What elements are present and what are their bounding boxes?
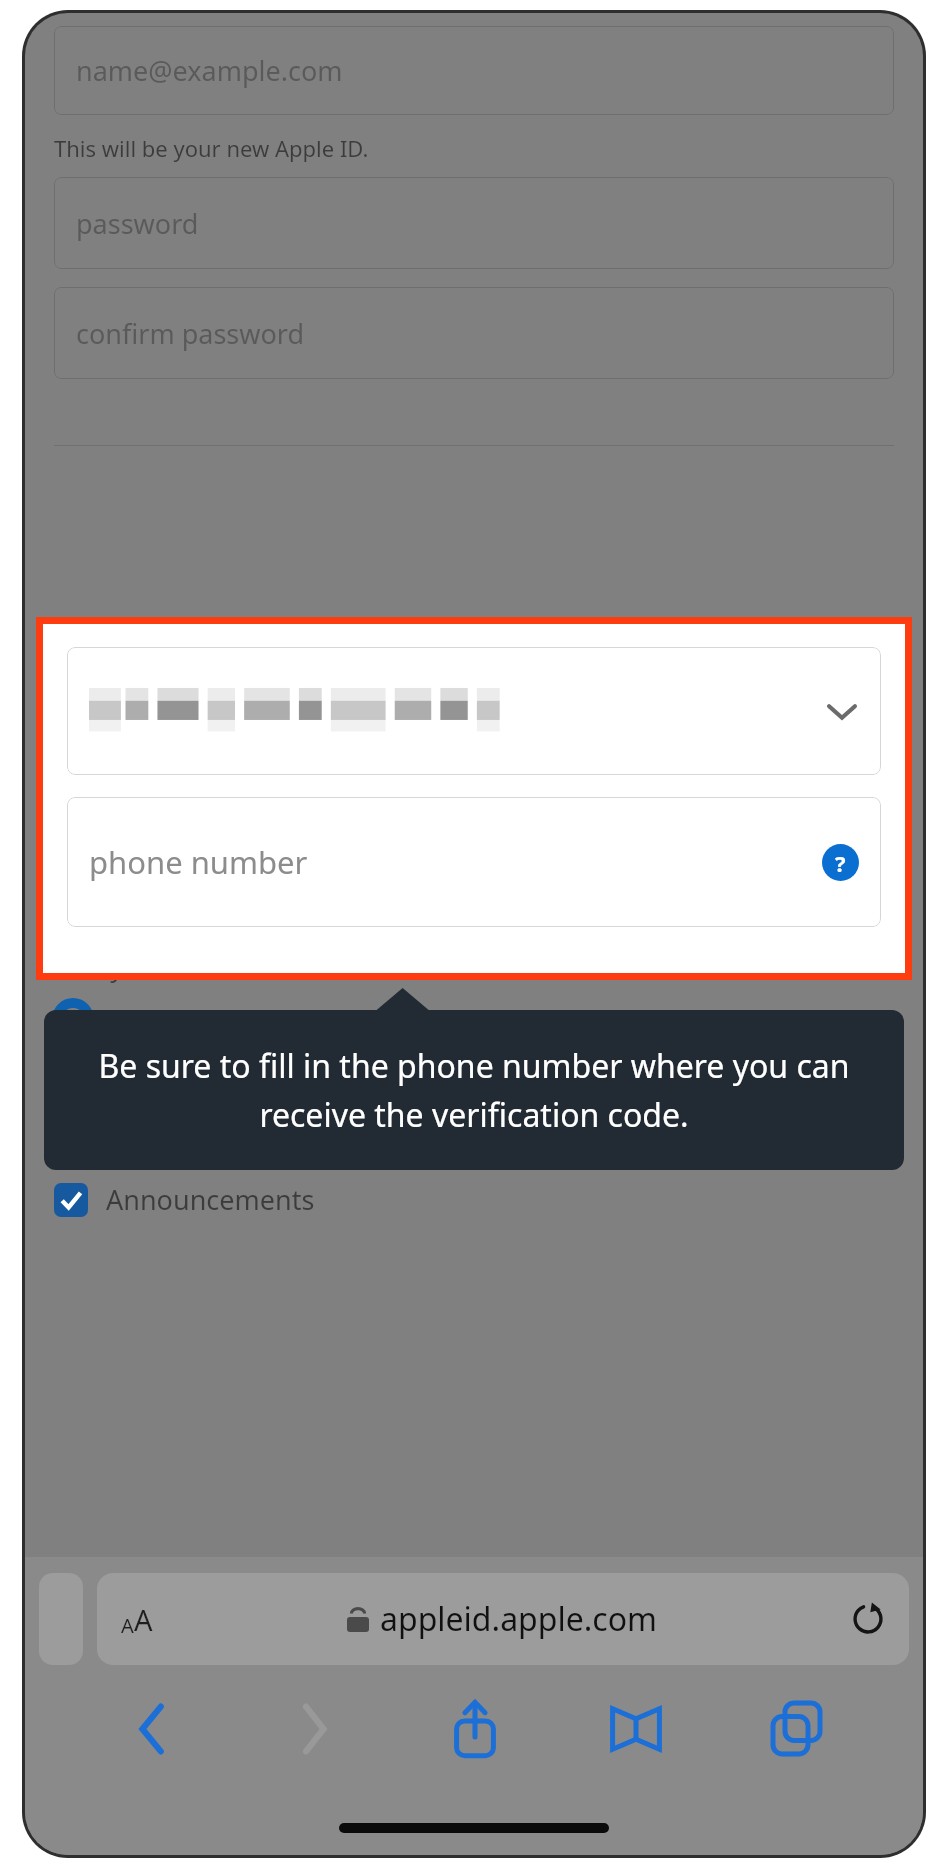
button[interactable]: Expand country list xyxy=(67,647,881,775)
button[interactable]: Phone call xyxy=(54,1048,894,1094)
button[interactable]: Text message xyxy=(54,996,894,1042)
staticText: name@example.com xyxy=(76,52,343,89)
button[interactable]: Reload page xyxy=(851,1602,885,1636)
other: Expand country list xyxy=(825,694,859,728)
button[interactable]: Text size options xyxy=(97,1573,909,1665)
staticText: confirm password xyxy=(76,315,305,352)
button[interactable] xyxy=(54,1183,88,1217)
staticText: appleid.apple.com xyxy=(380,1597,657,1641)
staticText: Verify with a: xyxy=(54,949,212,984)
button[interactable]: confirm password xyxy=(54,287,894,379)
staticText: This will be your new Apple ID. xyxy=(54,133,369,163)
button[interactable]: name@example.com xyxy=(54,26,894,115)
button[interactable]: Tabs xyxy=(716,1687,877,1771)
staticText: password xyxy=(76,205,199,242)
staticText: Phone call xyxy=(116,1052,252,1090)
button[interactable]: Bookmarks xyxy=(555,1687,716,1771)
staticText: Be sure to fill in the phone number wher… xyxy=(78,1044,870,1136)
staticText: phone number xyxy=(89,841,822,883)
staticText: Announcements xyxy=(106,1181,315,1218)
button[interactable]: phone number xyxy=(67,797,881,927)
button[interactable]: Back xyxy=(71,1687,233,1771)
button[interactable]: Share xyxy=(394,1687,555,1771)
staticText: A xyxy=(134,1600,153,1639)
staticText: ? xyxy=(835,848,846,878)
button[interactable]: password xyxy=(54,177,894,269)
button[interactable]: Text size options xyxy=(121,1600,153,1639)
staticText: A xyxy=(121,1612,134,1639)
button[interactable]: Help about phone number xyxy=(822,844,859,881)
staticText: Text message xyxy=(116,1000,295,1038)
button[interactable] xyxy=(39,1573,83,1665)
